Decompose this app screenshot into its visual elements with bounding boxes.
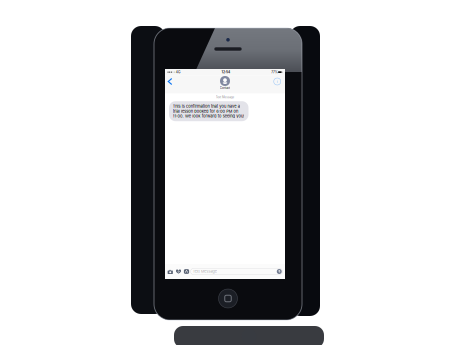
button[interactable]: Back [165, 94, 205, 144]
staticText: 4G [207, 73, 226, 89]
staticText: This is confirmation that you have a tri… [196, 209, 453, 267]
